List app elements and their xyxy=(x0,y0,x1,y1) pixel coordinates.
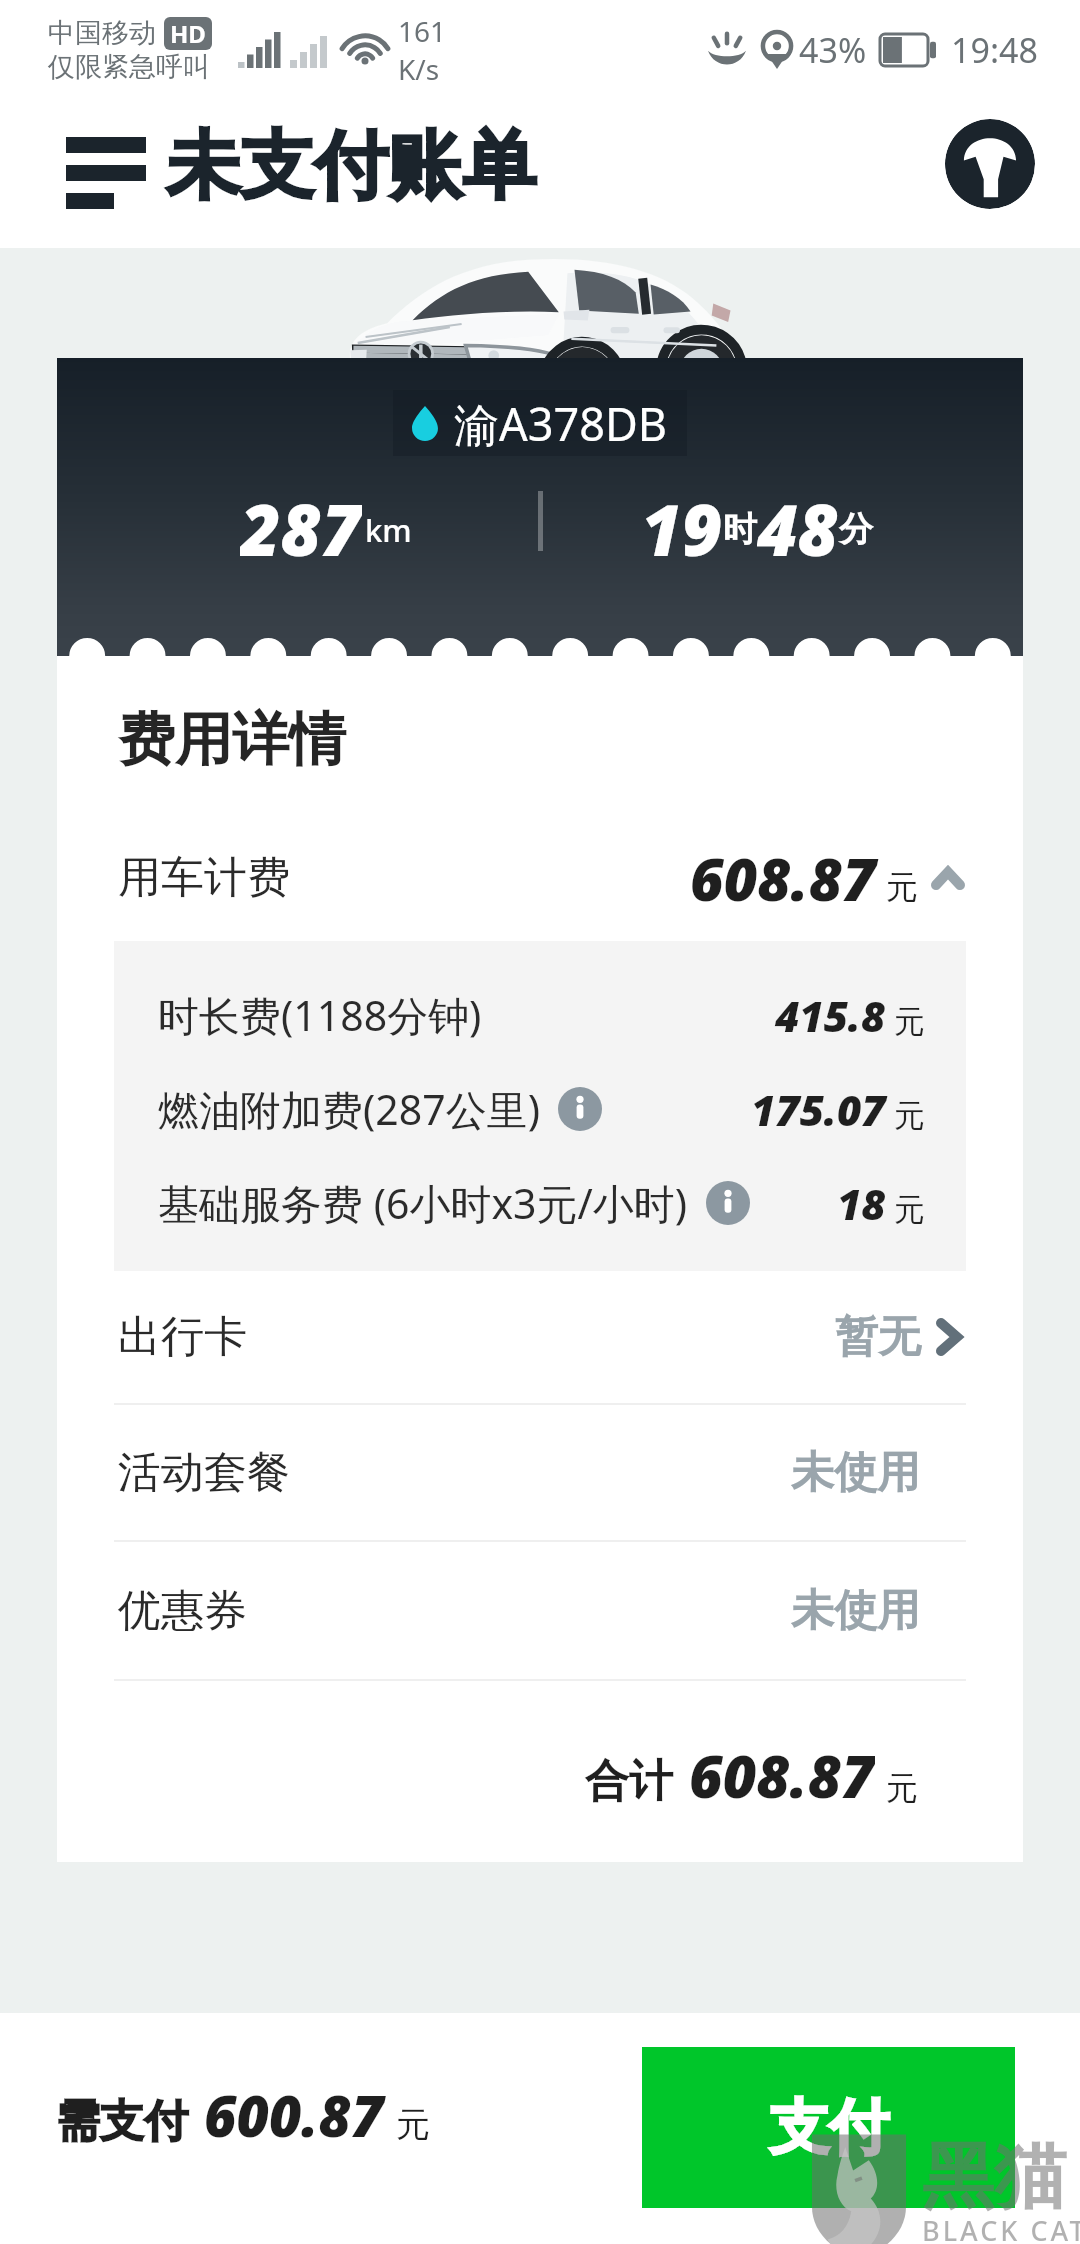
staticText: 元 xyxy=(886,1768,918,1808)
button[interactable]: 出行卡 xyxy=(57,1271,1023,1403)
button[interactable]: 优惠券 xyxy=(57,1542,1023,1679)
staticText: 时长费(1188分钟) xyxy=(158,987,482,1043)
staticText: 用车计费 xyxy=(118,851,290,905)
staticText: 未支付账单 xyxy=(166,120,536,213)
staticText: 48 xyxy=(757,481,839,561)
staticText: 19:48 xyxy=(951,27,1038,73)
button[interactable]: 活动套餐 xyxy=(57,1405,1023,1540)
staticText: 中国移动 xyxy=(48,16,156,50)
staticText: 161 xyxy=(398,12,447,50)
staticText: 600.87 xyxy=(204,2077,384,2153)
staticText: 分 xyxy=(839,508,873,551)
staticText: 608.87 xyxy=(690,839,876,918)
staticText: 支付 xyxy=(769,2090,889,2166)
staticText: K/s xyxy=(398,50,440,88)
staticText: 暂无 xyxy=(835,1310,921,1364)
staticText: 基础服务费 (6小时x3元/小时) xyxy=(158,1175,688,1231)
staticText: 608.87 xyxy=(689,1736,875,1814)
staticText: 未使用 xyxy=(791,1446,920,1500)
staticText: BLACK CAT xyxy=(922,2212,1080,2244)
staticText: 287 xyxy=(240,481,362,561)
staticText: 元 xyxy=(396,2103,430,2146)
staticText: 元 xyxy=(894,1096,925,1135)
staticText: 未使用 xyxy=(791,1584,920,1638)
staticText: 费用详情 xyxy=(118,704,346,776)
staticText: 元 xyxy=(894,1190,925,1229)
staticText: 渝A378DB xyxy=(454,393,668,454)
button[interactable]: 用车计费 xyxy=(57,832,1023,924)
staticText: 415.8 xyxy=(775,987,886,1044)
button[interactable]: Menu xyxy=(58,122,154,212)
staticText: 43% xyxy=(799,27,867,73)
staticText: 活动套餐 xyxy=(118,1446,290,1500)
staticText: 仅限紧急呼叫 xyxy=(48,50,210,84)
staticText: 合计 xyxy=(585,1754,673,1809)
staticText: 燃油附加费(287公里) xyxy=(158,1081,540,1137)
staticText: 黑猫 xyxy=(922,2132,1066,2223)
staticText: 18 xyxy=(837,1175,886,1232)
staticText: 元 xyxy=(894,1002,925,1041)
staticText: 时 xyxy=(723,508,757,551)
staticText: 19 xyxy=(641,481,723,561)
staticText: 175.07 xyxy=(751,1081,886,1138)
staticText: km xyxy=(365,509,412,551)
staticText: 元 xyxy=(886,867,918,907)
button[interactable]: Customer service xyxy=(938,112,1042,216)
staticText: HD xyxy=(170,17,206,50)
staticText: 优惠券 xyxy=(118,1584,247,1638)
staticText: 需支付 xyxy=(56,2094,188,2149)
staticText: 出行卡 xyxy=(118,1310,247,1364)
button[interactable]: 支付 xyxy=(642,2047,1015,2208)
